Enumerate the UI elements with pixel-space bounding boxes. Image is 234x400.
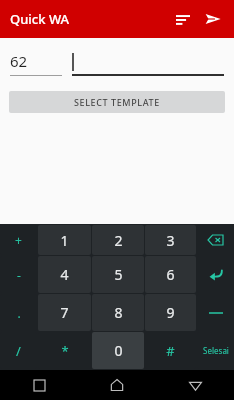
staticText: #: [166, 342, 175, 360]
button[interactable]: 4: [38, 256, 91, 293]
button[interactable]: Back: [156, 370, 234, 400]
button[interactable]: Send: [198, 4, 228, 34]
staticText: 3: [166, 231, 175, 250]
button[interactable]: Selesai: [197, 332, 234, 369]
button[interactable]: 9: [145, 294, 196, 331]
button[interactable]: Sort: [168, 4, 198, 34]
staticText: SELECT TEMPLATE: [74, 96, 160, 108]
staticText: *: [61, 342, 69, 360]
button[interactable]: *: [38, 332, 91, 369]
button[interactable]: 2: [92, 225, 144, 255]
button[interactable]: 8: [92, 294, 144, 331]
button[interactable]: Dash: [197, 294, 234, 331]
button[interactable]: 6: [145, 256, 196, 293]
staticText: 62: [10, 51, 28, 71]
button[interactable]: -: [0, 256, 37, 293]
button[interactable]: 5: [92, 256, 144, 293]
button[interactable]: 7: [38, 294, 91, 331]
staticText: -: [17, 267, 21, 283]
staticText: 2: [114, 231, 123, 250]
button[interactable]: SELECT TEMPLATE: [9, 91, 225, 113]
button[interactable]: /: [0, 332, 37, 369]
staticText: 5: [114, 265, 123, 284]
staticText: Selesai: [203, 345, 229, 356]
staticText: 7: [60, 303, 69, 322]
staticText: .: [17, 305, 21, 321]
staticText: 8: [114, 303, 123, 322]
staticText: /: [16, 342, 21, 360]
button[interactable]: Enter: [197, 256, 234, 293]
staticText: 4: [60, 265, 69, 284]
button[interactable]: 1: [38, 225, 91, 255]
staticText: 9: [166, 303, 175, 322]
staticText: 0: [114, 341, 123, 360]
staticText: 6: [166, 265, 175, 284]
button[interactable]: 0: [92, 332, 144, 369]
staticText: 1: [60, 231, 69, 250]
button[interactable]: .: [0, 294, 37, 331]
button[interactable]: Home: [78, 370, 156, 400]
button[interactable]: #: [145, 332, 196, 369]
button[interactable]: Backspace: [197, 225, 234, 255]
staticText: Quick WA: [10, 10, 70, 28]
button[interactable]: Recent apps: [0, 370, 78, 400]
staticText: +: [15, 232, 22, 248]
button[interactable]: +: [0, 225, 37, 255]
button[interactable]: 3: [145, 225, 196, 255]
